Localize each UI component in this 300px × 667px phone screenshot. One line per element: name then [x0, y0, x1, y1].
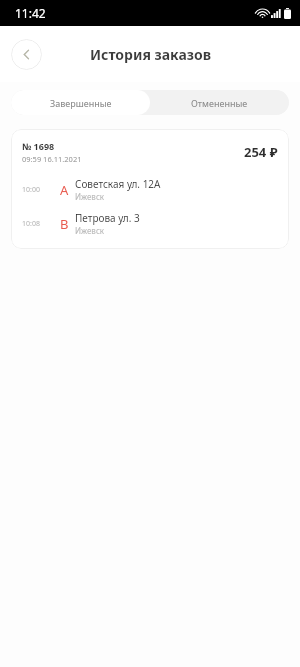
staticText: Ижевск [75, 191, 105, 202]
staticText: Ижевск [75, 225, 105, 236]
staticText: A [60, 181, 69, 199]
button[interactable]: Отмененные [150, 90, 289, 115]
staticText: Отмененные [191, 97, 248, 109]
staticText: Завершенные [50, 97, 112, 109]
staticText: Советская ул. 12А [75, 177, 161, 191]
staticText: B [60, 215, 69, 233]
staticText: № 1698 [22, 140, 55, 152]
staticText: Петрова ул. 3 [75, 211, 140, 225]
button[interactable]: № 1698 [11, 129, 289, 249]
staticText: 10:08 [22, 219, 40, 229]
staticText: 09:59 16.11.2021 [22, 154, 82, 164]
staticText: История заказов [90, 45, 211, 64]
staticText: 254 ₽ [244, 143, 278, 161]
button[interactable]: Back [11, 39, 42, 70]
staticText: 11:42 [15, 5, 46, 21]
button[interactable]: Завершенные [11, 90, 150, 115]
staticText: 10:00 [22, 185, 40, 195]
